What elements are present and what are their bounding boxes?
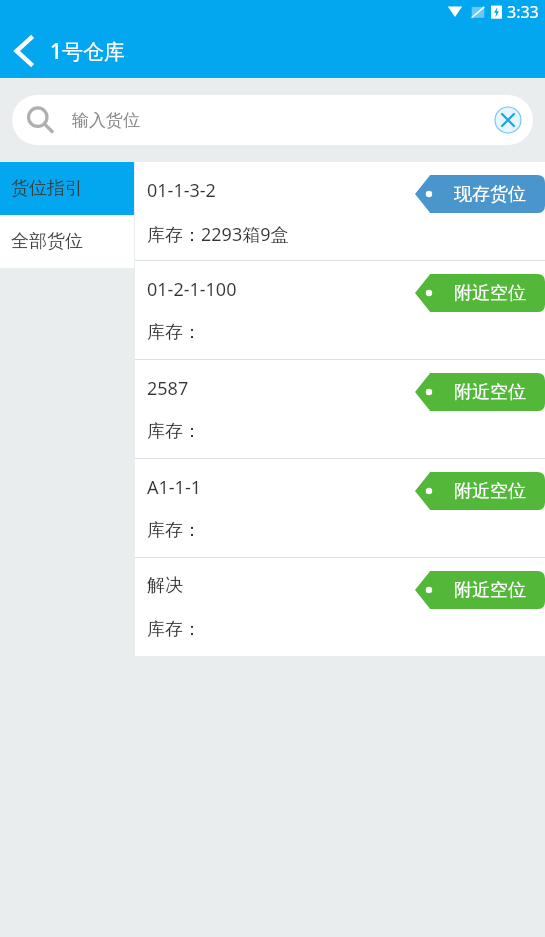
button[interactable]: 01-2-1-100 (135, 261, 545, 359)
button[interactable]: Clear (493, 105, 523, 135)
button[interactable]: Back (0, 27, 48, 75)
staticText: 输入货位 (72, 110, 140, 131)
button[interactable]: 01-1-3-2 (135, 162, 545, 260)
staticText: 全部货位 (11, 230, 83, 253)
staticText: 现存货位 (454, 183, 526, 206)
button[interactable]: 附近空位 (415, 274, 545, 312)
button[interactable]: 货位指引 (0, 162, 134, 215)
staticText: A1-1-1 (147, 475, 201, 500)
button[interactable]: A1-1-1 (135, 459, 545, 557)
button[interactable]: 附近空位 (415, 472, 545, 510)
staticText: 库存： (147, 618, 201, 641)
staticText: 01-1-3-2 (147, 178, 216, 203)
staticText: 附近空位 (454, 579, 526, 602)
staticText: 库存： (147, 519, 201, 542)
button[interactable]: 2587 (135, 360, 545, 458)
staticText: 库存： (147, 420, 201, 443)
staticText: 01-2-1-100 (147, 277, 237, 302)
staticText: 附近空位 (454, 480, 526, 503)
staticText: 1号仓库 (50, 37, 126, 66)
staticText: 库存： (147, 321, 201, 344)
button[interactable]: 附近空位 (415, 571, 545, 609)
button[interactable]: 全部货位 (0, 215, 134, 268)
button[interactable]: 附近空位 (415, 373, 545, 411)
staticText: 2587 (147, 376, 189, 401)
button[interactable]: 解决 (135, 558, 545, 656)
staticText: 3:33 (507, 1, 539, 23)
button[interactable]: 输入货位 (12, 95, 533, 145)
button[interactable]: 现存货位 (415, 175, 545, 213)
staticText: 附近空位 (454, 282, 526, 305)
staticText: 解决 (147, 574, 183, 597)
staticText: 附近空位 (454, 381, 526, 404)
staticText: 库存：2293箱9盒 (147, 222, 289, 247)
staticText: 货位指引 (11, 177, 83, 200)
